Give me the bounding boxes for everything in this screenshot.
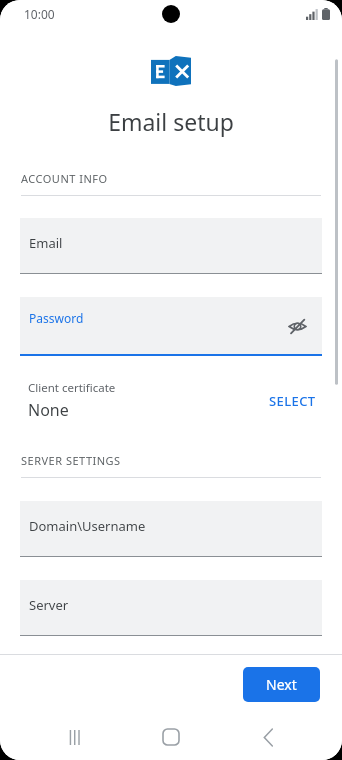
button[interactable]: Email <box>20 218 322 274</box>
button[interactable]: Show password <box>280 309 314 343</box>
staticText: Email <box>29 234 63 252</box>
button[interactable]: Next <box>243 667 320 702</box>
staticText: ACCOUNT INFO <box>21 171 108 186</box>
button[interactable]: Home <box>149 715 193 759</box>
button[interactable]: Client certificate <box>28 380 322 421</box>
staticText: None <box>28 399 69 421</box>
staticText: 10:00 <box>24 6 55 22</box>
button[interactable]: Back <box>246 715 290 759</box>
staticText: Next <box>266 675 297 694</box>
staticText: Server <box>29 596 69 614</box>
staticText: SERVER SETTINGS <box>21 453 121 468</box>
button[interactable]: Domain\Username <box>20 501 322 557</box>
staticText: Email setup <box>0 106 342 137</box>
staticText: Domain\Username <box>29 517 146 535</box>
button[interactable]: Password <box>20 297 322 356</box>
button[interactable]: Server <box>20 580 322 636</box>
button[interactable]: Recent apps <box>53 715 97 759</box>
button[interactable]: SELECT <box>263 384 322 418</box>
staticText: Password <box>29 310 84 326</box>
staticText: SELECT <box>269 392 316 410</box>
staticText: Client certificate <box>28 380 116 396</box>
